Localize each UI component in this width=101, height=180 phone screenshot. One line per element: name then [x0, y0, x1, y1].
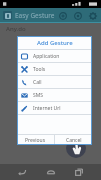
staticText: Application: [33, 53, 60, 60]
button[interactable]: SMS: [17, 89, 92, 101]
button[interactable]: Add: [57, 10, 68, 21]
staticText: Add Gesture: [37, 39, 73, 47]
button[interactable]: App icon: [3, 11, 12, 20]
button[interactable]: Back: [15, 165, 29, 179]
staticText: Call: [33, 79, 42, 86]
button[interactable]: Cancel: [55, 135, 92, 145]
button[interactable]: Draw gesture: [66, 138, 86, 158]
staticText: Internet Url: [33, 105, 61, 112]
staticText: Cancel: [66, 137, 82, 144]
staticText: Easy Gesture: [15, 11, 55, 20]
button[interactable]: Previous: [17, 135, 54, 145]
button[interactable]: Call: [17, 76, 92, 88]
button[interactable]: Internet Url: [17, 102, 92, 114]
button[interactable]: Recents: [72, 165, 86, 179]
button[interactable]: Tools: [17, 63, 92, 75]
button[interactable]: Home: [44, 165, 58, 179]
button[interactable]: Settings: [87, 10, 98, 21]
staticText: Tools: [33, 66, 46, 73]
button[interactable]: Record: [72, 10, 83, 21]
button[interactable]: Application: [17, 50, 92, 62]
staticText: Any.do: [6, 25, 26, 33]
staticText: Previous: [25, 137, 46, 144]
staticText: SMS: [33, 92, 44, 99]
